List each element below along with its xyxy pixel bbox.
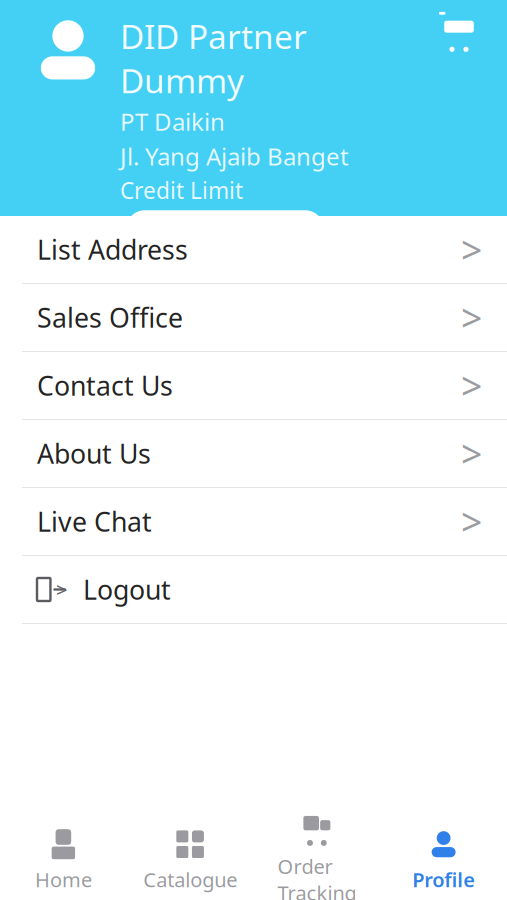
button[interactable]: Contact Us	[0, 352, 507, 420]
staticText: >	[461, 429, 482, 478]
button[interactable]: Home	[0, 826, 127, 896]
staticText: Catalogue	[143, 866, 237, 893]
button[interactable]: >	[0, 556, 507, 624]
staticText: List Address	[37, 232, 188, 267]
staticText: PT Daikin	[120, 105, 225, 137]
staticText: Live Chat	[37, 504, 152, 539]
staticText: Home	[35, 866, 92, 893]
button[interactable]: Sales Office	[0, 284, 507, 352]
button[interactable]: Catalogue	[127, 826, 254, 896]
button[interactable]: Profile	[380, 826, 507, 896]
staticText: >	[461, 225, 482, 274]
button[interactable]: Cart	[439, 2, 507, 52]
staticText: Contact Us	[37, 368, 173, 403]
button[interactable]: List Address	[0, 216, 507, 284]
staticText: Sales Office	[37, 300, 183, 335]
staticText: >	[461, 361, 482, 410]
staticText: Credit Limit	[120, 175, 243, 205]
button[interactable]: Live Chat	[0, 488, 507, 556]
staticText: Order Tracking	[277, 853, 356, 900]
staticText: >	[56, 576, 67, 603]
staticText: >	[461, 497, 482, 546]
staticText: Jl. Yang Ajaib Banget	[120, 140, 349, 172]
staticText: DID Partner Dummy	[120, 14, 307, 102]
staticText: Profile	[412, 866, 475, 893]
button[interactable]: Order Tracking	[253, 826, 380, 896]
staticText: Logout	[83, 572, 171, 607]
staticText: >	[461, 293, 482, 342]
staticText: About Us	[37, 436, 151, 471]
button[interactable]: About Us	[0, 420, 507, 488]
